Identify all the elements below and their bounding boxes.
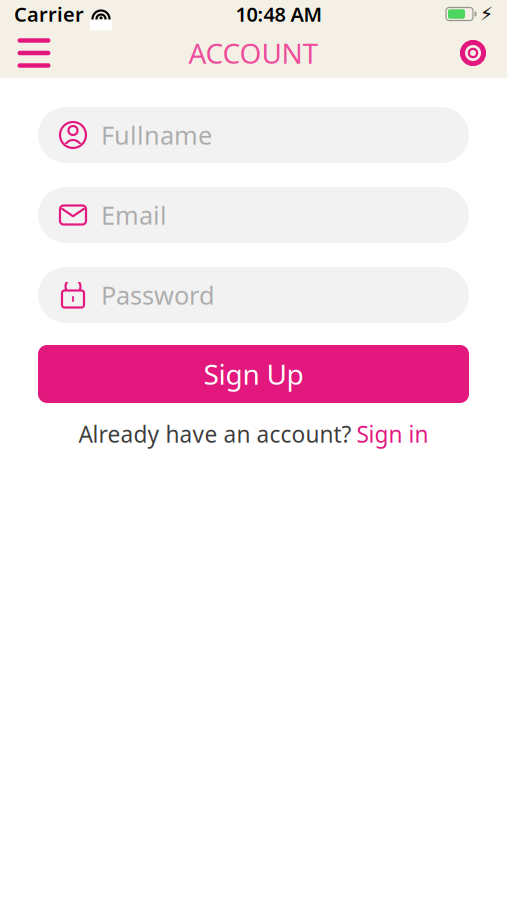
button[interactable]: Sign Up: [38, 345, 469, 403]
staticText: Carrier: [14, 1, 84, 27]
button[interactable]: Menu: [8, 30, 60, 76]
staticText: Email: [101, 198, 167, 232]
button[interactable]: Password: [38, 267, 469, 323]
button[interactable]: Settings: [447, 30, 499, 76]
staticText: Password: [101, 278, 215, 312]
button[interactable]: Sign in: [356, 419, 428, 449]
staticText: ACCOUNT: [188, 34, 318, 72]
staticText: Sign Up: [203, 355, 303, 393]
staticText: Already have an account?: [78, 419, 351, 449]
button[interactable]: Email: [38, 187, 469, 243]
staticText: Fullname: [101, 118, 212, 152]
staticText: ⚡︎: [480, 3, 493, 25]
button[interactable]: Fullname: [38, 107, 469, 163]
staticText: 10:48 AM: [235, 1, 322, 27]
staticText: Sign in: [356, 419, 428, 449]
